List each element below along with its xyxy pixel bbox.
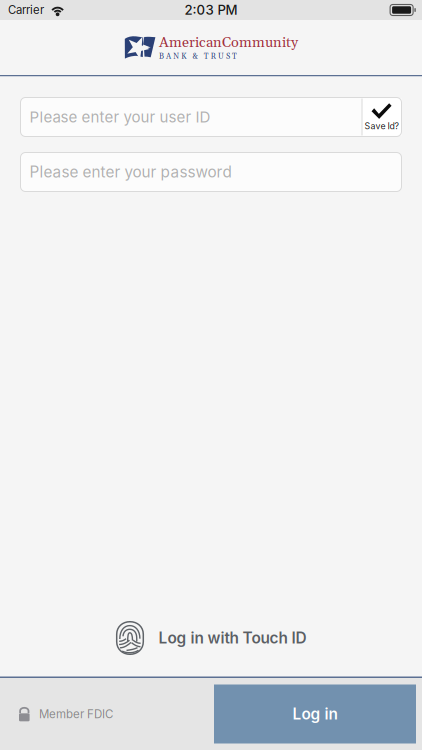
staticText: Carrier [8, 3, 44, 17]
staticText: Member FDIC [39, 707, 113, 721]
staticText: BANK & TRUST [159, 52, 237, 61]
button[interactable]: Log in with Touch ID [115, 620, 306, 655]
staticText: Please enter your password [29, 163, 231, 181]
staticText: Please enter your user ID [29, 108, 210, 126]
staticText: Log in with Touch ID [158, 629, 306, 647]
staticText: AmericanCommunity [159, 33, 298, 52]
staticText: Save Id? [364, 121, 398, 131]
staticText: Log in [292, 705, 337, 723]
button[interactable]: Save Id? [361, 98, 401, 135]
staticText: 2:03 PM [184, 2, 237, 18]
button[interactable]: Log in [214, 684, 416, 743]
